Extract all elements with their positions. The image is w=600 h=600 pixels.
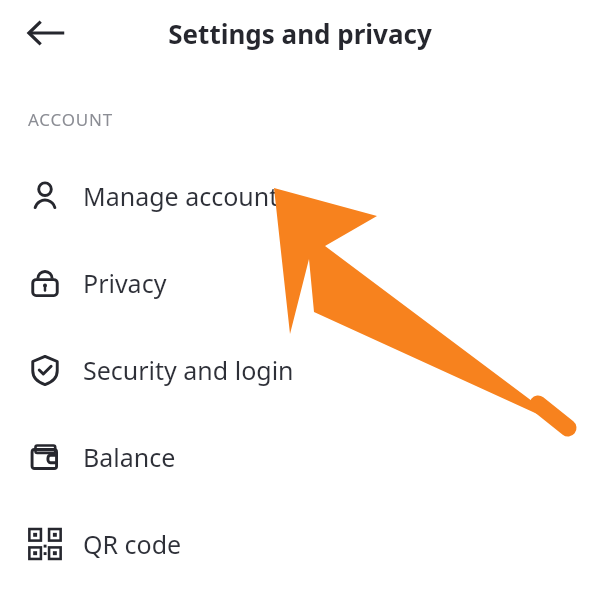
staticText: Security and login xyxy=(83,353,294,387)
button[interactable]: Manage account xyxy=(0,152,600,239)
staticText: Privacy xyxy=(83,266,167,300)
staticText: QR code xyxy=(83,527,182,561)
button[interactable]: Security and login xyxy=(0,326,600,413)
staticText: ACCOUNT xyxy=(28,108,114,131)
staticText: Balance xyxy=(83,440,176,474)
staticText: Manage account xyxy=(83,179,279,213)
button[interactable]: Balance xyxy=(0,413,600,500)
staticText: Settings and privacy xyxy=(0,16,600,51)
button[interactable]: Privacy xyxy=(0,239,600,326)
button[interactable]: Back xyxy=(18,5,74,61)
button[interactable]: QR code xyxy=(0,500,600,587)
